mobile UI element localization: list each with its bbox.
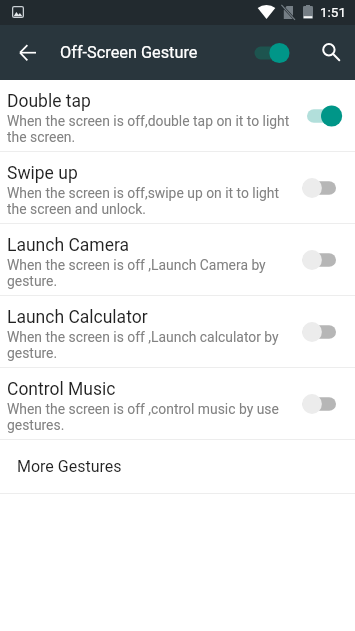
staticText: More Gestures (17, 457, 122, 476)
staticText: When the screen is off,swipe up on it to… (7, 185, 280, 217)
staticText: When the screen is off ,Launch Camera by… (7, 257, 266, 289)
staticText: When the screen is off ,control music by… (7, 401, 279, 433)
button[interactable]: Double tap (0, 80, 355, 151)
staticText: Launch Camera (7, 235, 130, 256)
staticText: Swipe up (7, 163, 78, 184)
staticText: When the screen is off ,Launch calculato… (7, 329, 279, 361)
button[interactable]: Swipe up (0, 152, 355, 223)
button[interactable]: Off-screen gesture master switch (248, 30, 294, 76)
button[interactable]: More Gestures (0, 440, 355, 493)
button[interactable]: Launch Calculator (0, 296, 355, 367)
staticText: Double tap (7, 91, 91, 112)
staticText: 1:51 (320, 4, 347, 20)
staticText: Launch Calculator (7, 307, 148, 328)
button[interactable]: Navigate up (0, 29, 48, 77)
staticText: Control Music (7, 379, 116, 400)
button[interactable]: Launch Camera (0, 224, 355, 295)
button[interactable]: Search (307, 29, 355, 77)
staticText: When the screen is off,double tap on it … (7, 113, 290, 145)
button[interactable]: Control Music (0, 368, 355, 439)
staticText: Off-Screen Gesture (60, 43, 198, 62)
